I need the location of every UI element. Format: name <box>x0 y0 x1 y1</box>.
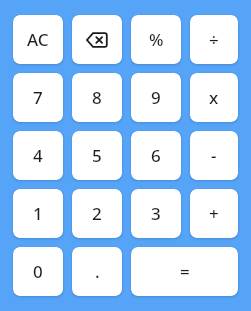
button[interactable]: AC <box>13 15 63 64</box>
button[interactable] <box>72 15 122 64</box>
staticText: % <box>149 28 164 51</box>
staticText: x <box>209 86 219 109</box>
staticText: 6 <box>151 144 161 167</box>
staticText: 4 <box>33 144 43 167</box>
button[interactable]: 6 <box>131 131 181 180</box>
button[interactable]: = <box>131 247 238 296</box>
staticText: 1 <box>33 202 43 225</box>
button[interactable]: 2 <box>72 189 122 238</box>
staticText: AC <box>27 28 49 51</box>
button[interactable]: x <box>190 73 238 122</box>
staticText: - <box>211 144 217 167</box>
button[interactable]: ÷ <box>190 15 238 64</box>
staticText: = <box>180 260 190 283</box>
button[interactable]: 9 <box>131 73 181 122</box>
staticText: 2 <box>92 202 102 225</box>
staticText: 7 <box>33 86 43 109</box>
button[interactable]: 0 <box>13 247 63 296</box>
staticText: 5 <box>92 144 102 167</box>
staticText: . <box>95 260 100 283</box>
button[interactable]: . <box>72 247 122 296</box>
button[interactable]: - <box>190 131 238 180</box>
staticText: 3 <box>151 202 161 225</box>
button[interactable]: 3 <box>131 189 181 238</box>
button[interactable]: 7 <box>13 73 63 122</box>
staticText: 8 <box>92 86 102 109</box>
staticText: ÷ <box>209 28 219 51</box>
button[interactable]: 5 <box>72 131 122 180</box>
button[interactable]: % <box>131 15 181 64</box>
staticText: + <box>209 202 219 225</box>
button[interactable]: + <box>190 189 238 238</box>
button[interactable]: 8 <box>72 73 122 122</box>
staticText: 9 <box>151 86 161 109</box>
staticText: 0 <box>33 260 43 283</box>
button[interactable]: 4 <box>13 131 63 180</box>
button[interactable]: 1 <box>13 189 63 238</box>
